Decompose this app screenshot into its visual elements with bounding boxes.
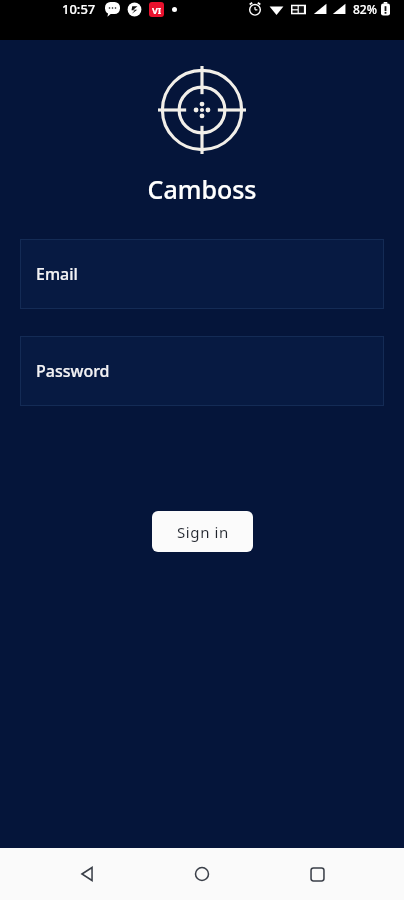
button[interactable]: Recent apps [289, 848, 345, 900]
staticText: Camboss [0, 172, 404, 206]
staticText: 82% [353, 1, 377, 17]
button[interactable]: Email [20, 239, 384, 309]
staticText: Password [36, 360, 110, 382]
button[interactable]: Home [174, 848, 230, 900]
button[interactable]: Password [20, 336, 384, 406]
button[interactable]: Sign in [152, 511, 253, 552]
staticText: Sign in [177, 522, 229, 542]
staticText: Email [36, 263, 78, 285]
staticText: 10:57 [62, 0, 96, 18]
button[interactable]: Back [59, 848, 115, 900]
staticText: VI [152, 4, 162, 16]
